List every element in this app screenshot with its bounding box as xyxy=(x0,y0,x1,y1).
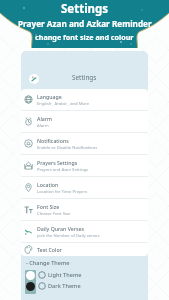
button[interactable]: Location xyxy=(21,177,148,198)
staticText: Dark Theme xyxy=(48,282,81,290)
button[interactable]: Notifications xyxy=(21,133,148,154)
staticText: Enable or Disable Notifications xyxy=(37,145,98,151)
staticText: Prayers Settings xyxy=(37,159,78,166)
staticText: - Change Theme xyxy=(26,259,70,267)
staticText: English , Arabic , and More xyxy=(37,101,90,107)
staticText: Location xyxy=(37,181,59,188)
staticText: Notifications xyxy=(37,137,69,144)
staticText: change font size and colour xyxy=(35,32,134,42)
button[interactable]: Text Color xyxy=(21,243,148,256)
staticText: Prayers and Azan Settings xyxy=(37,167,89,173)
button[interactable]: Font Size xyxy=(21,199,148,220)
other: App logo xyxy=(29,74,39,84)
staticText: Prayer Azan and Azkar Reminder xyxy=(18,18,152,29)
button[interactable]: Language xyxy=(21,89,148,110)
staticText: Daily Quran Verses xyxy=(37,225,84,232)
button[interactable]: Light Theme xyxy=(38,271,82,279)
staticText: Choose Font Size xyxy=(37,211,71,217)
button[interactable]: Alarm xyxy=(21,111,148,132)
staticText: Text Color xyxy=(37,246,62,253)
button[interactable]: Prayers Settings xyxy=(21,155,148,176)
staticText: Language xyxy=(37,93,62,100)
staticText: Settings xyxy=(61,1,109,17)
button[interactable]: Dark Theme xyxy=(38,282,81,290)
staticText: pick the Number of Daily verses xyxy=(37,233,100,239)
staticText: Location for Time Prayers xyxy=(37,189,88,195)
staticText: Settings xyxy=(72,73,97,82)
staticText: Light Theme xyxy=(48,271,82,279)
button[interactable]: Daily Quran Verses xyxy=(21,221,148,242)
staticText: Alarm xyxy=(37,115,52,122)
staticText: Font Size xyxy=(37,203,60,210)
staticText: Alarm xyxy=(37,123,49,129)
